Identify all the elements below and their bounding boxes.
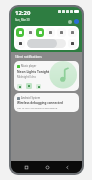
staticText: 12:20 [15,9,31,17]
button[interactable]: Android System [14,93,79,112]
staticText: Sun, Mar 30 [15,18,30,22]
button[interactable]: Volume [16,39,25,48]
button[interactable]: Recents [21,162,31,172]
staticText: Tap to turn off wireless debugging [17,106,58,109]
staticText: Silent notifications [15,55,42,59]
button[interactable]: Next [36,84,41,89]
button[interactable]: Do not disturb [46,28,55,37]
button[interactable]: Play [26,83,32,89]
button[interactable]: Music player [14,61,79,91]
staticText: Android System [21,96,41,100]
button[interactable]: Brightness [27,39,66,48]
staticText: Midnight Echo [17,75,36,79]
button[interactable]: Back [62,162,72,172]
button[interactable]: Settings [68,20,72,24]
button[interactable]: Previous [17,84,22,89]
button[interactable]: Home [42,162,52,172]
button[interactable]: User profile [74,19,79,24]
button[interactable]: Bluetooth [26,28,34,37]
staticText: Neon Lights Tonight [17,70,50,74]
button[interactable]: Flashlight [57,28,66,37]
button[interactable]: Hotspot [36,28,44,37]
button[interactable]: Wi-Fi [16,28,24,37]
staticText: Wireless debugging connected [17,101,63,105]
button[interactable]: Auto rotate [68,28,77,37]
button[interactable]: Brightness auto [68,39,77,48]
staticText: Music player [21,64,37,68]
